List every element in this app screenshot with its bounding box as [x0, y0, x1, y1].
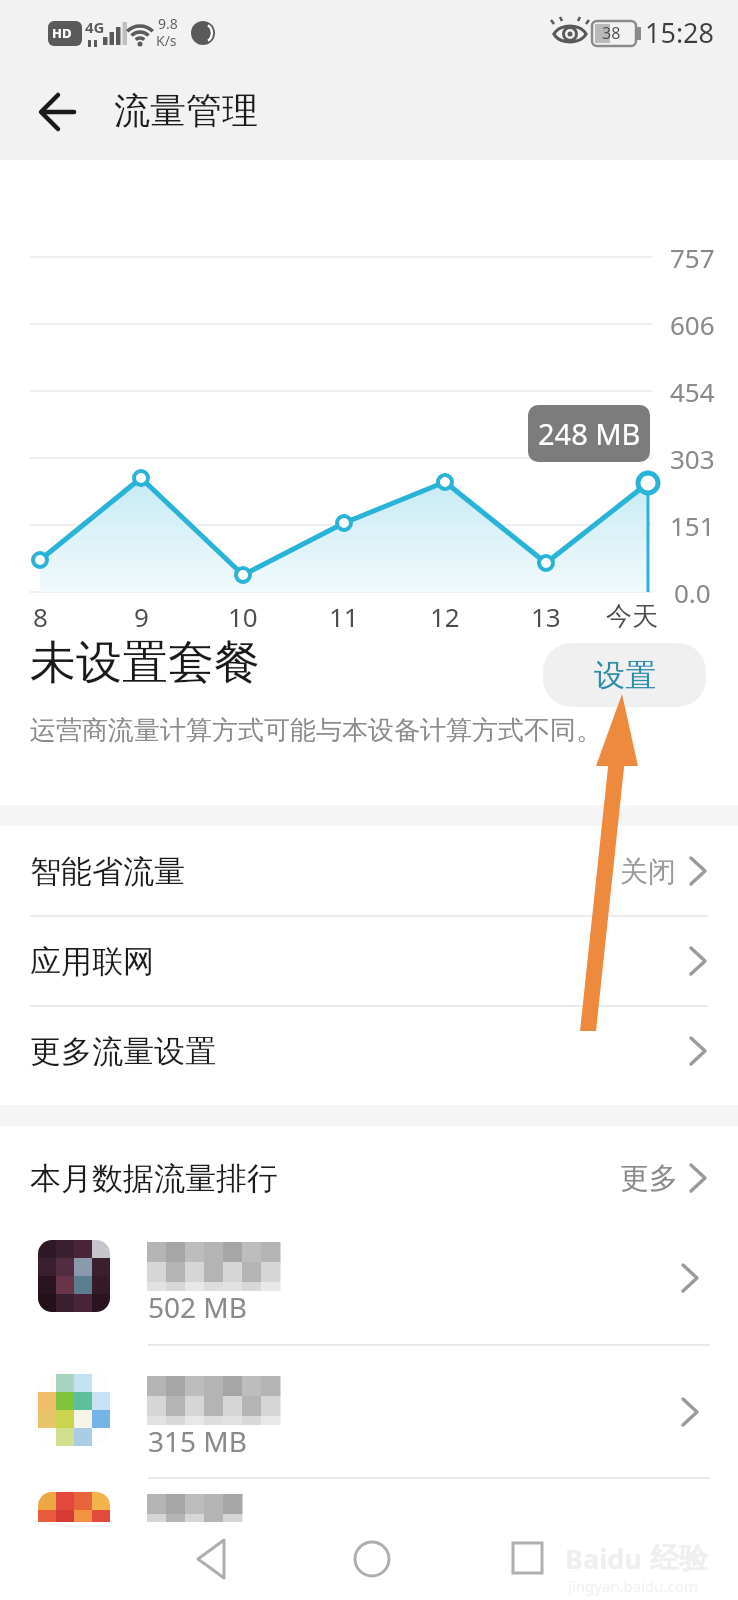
staticText: 151 — [670, 508, 715, 543]
staticText: 4G — [85, 17, 105, 37]
staticText: jingyan.baidu.com — [568, 1576, 698, 1596]
staticText: K/s — [156, 31, 177, 50]
staticText: 更多流量设置 — [30, 1032, 216, 1071]
staticText: 本月数据流量排行 — [30, 1159, 278, 1198]
staticText: 流量管理 — [114, 88, 258, 133]
button[interactable] — [0, 1492, 738, 1596]
staticText: 13 — [531, 599, 561, 634]
button[interactable]: 502 MB — [0, 1240, 738, 1344]
staticText: 11 — [329, 599, 359, 634]
button[interactable] — [28, 86, 84, 138]
staticText: 应用联网 — [30, 942, 154, 981]
button[interactable]: 更多流量设置 — [0, 1006, 738, 1096]
staticText: 315 MB — [148, 1422, 247, 1460]
staticText: 今天 — [606, 600, 658, 633]
staticText: 248 MB — [538, 414, 641, 453]
staticText: 更多 — [620, 1160, 678, 1197]
staticText: 经验 — [650, 1540, 708, 1577]
staticText: 0.0 — [674, 575, 711, 610]
staticText: 未设置套餐 — [30, 634, 260, 692]
staticText: 303 — [670, 441, 715, 476]
staticText: HD — [52, 24, 72, 42]
button[interactable]: 315 MB — [0, 1374, 738, 1478]
button[interactable] — [175, 1532, 250, 1592]
staticText: 设置 — [594, 656, 656, 695]
staticText: 12 — [430, 599, 460, 634]
staticText: 454 — [670, 374, 715, 409]
staticText: 智能省流量 — [30, 852, 185, 891]
staticText: 757 — [670, 240, 715, 275]
button[interactable]: 智能省流量 — [0, 826, 738, 916]
staticText: 502 MB — [148, 1288, 247, 1326]
staticText: 关闭 — [620, 854, 676, 889]
staticText: 15:28 — [645, 14, 715, 51]
staticText: 9.8 — [158, 14, 178, 33]
button[interactable]: 设置 — [543, 643, 706, 707]
staticText: 8 — [33, 599, 48, 634]
staticText: 38 — [602, 22, 621, 44]
button[interactable] — [340, 1532, 405, 1592]
button[interactable]: 应用联网 — [0, 916, 738, 1006]
staticText: Baidu — [565, 1540, 642, 1577]
staticText: 606 — [670, 307, 715, 342]
button[interactable]: 本月数据流量排行 — [0, 1148, 738, 1208]
button[interactable] — [495, 1532, 560, 1592]
staticText: 运营商流量计算方式可能与本设备计算方式不同。 — [30, 714, 602, 747]
staticText: 9 — [134, 599, 149, 634]
staticText: 10 — [228, 599, 258, 634]
